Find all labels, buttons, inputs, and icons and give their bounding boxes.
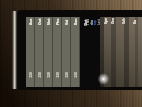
staticText: Range [132,18,136,24]
button[interactable]: Phone [53,17,61,87]
staticText: This is the body copy of the item [86,19,90,25]
staticText: Speed [103,18,107,24]
button[interactable]: Details [80,17,100,87]
staticText: Notification [46,18,51,25]
staticText: Range [73,18,78,25]
staticText: Details [82,19,87,25]
button[interactable]: Volume [62,17,70,87]
staticText: 230 KB [73,70,77,77]
staticText: Available [28,18,33,25]
staticText: 230 KB [28,70,32,77]
staticText: 230 KB [46,70,50,77]
staticText: 230 KB [64,70,68,77]
button[interactable]: Range [71,17,79,87]
staticText: Orange Speed [110,18,114,24]
staticText: 230 KB [55,70,59,77]
staticText: Volume [64,18,69,25]
staticText: Schedule [121,18,125,24]
button[interactable]: Outside [35,17,43,87]
staticText: shown on the detail pane at right [90,19,94,25]
staticText: Outside [37,18,42,25]
staticText: Last updated today [97,19,101,25]
staticText: 230 KB [37,70,41,77]
button[interactable]: Notification [44,17,52,87]
button[interactable]: Available [26,17,34,87]
staticText: Phone [55,18,60,25]
staticText: tap to open the full record [93,19,97,25]
